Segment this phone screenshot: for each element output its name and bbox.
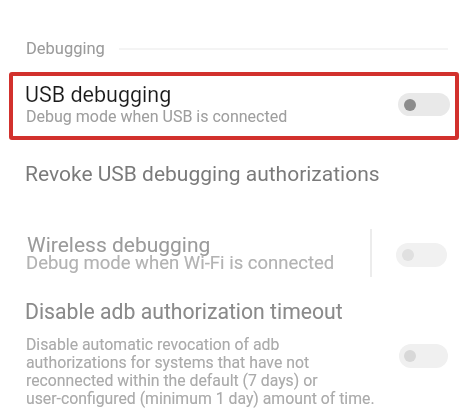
staticText: Wireless debugging (27, 233, 211, 258)
staticText: authorizations for systems that have not (26, 353, 310, 372)
staticText: reconnected within the default (7 days) … (26, 371, 318, 390)
staticText: Debug mode when Wi-Fi is connected (26, 252, 335, 274)
button[interactable] (13, 76, 455, 136)
button[interactable] (398, 93, 450, 116)
staticText: Disable adb authorization timeout (25, 299, 343, 324)
staticText: Debugging (26, 39, 105, 58)
button[interactable] (399, 344, 448, 368)
button[interactable] (0, 222, 474, 284)
staticText: user-configured (minimum 1 day) amount o… (26, 389, 375, 408)
staticText: USB debugging (25, 82, 172, 107)
staticText: Revoke USB debugging authorizations (25, 162, 380, 187)
button[interactable] (0, 152, 474, 198)
staticText: Debug mode when USB is connected (26, 107, 288, 126)
staticText: Disable automatic revocation of adb (26, 335, 280, 354)
button[interactable] (396, 243, 447, 267)
button[interactable] (0, 293, 474, 415)
